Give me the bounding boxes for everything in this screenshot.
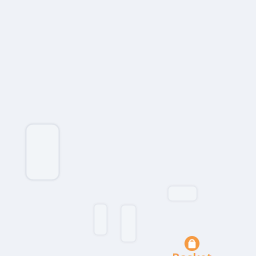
staticText: Basket [172,250,212,256]
button[interactable]: Basket [168,236,216,256]
